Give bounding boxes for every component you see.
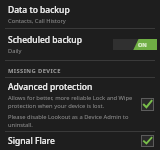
- staticText: Scheduled backup: [8, 34, 82, 46]
- staticText: Data to backup: [8, 4, 70, 16]
- staticText: Please disable Lookout as a Device Admin…: [8, 113, 137, 128]
- button[interactable]: Data to backup: [0, 0, 160, 28]
- button[interactable]: Advanced protection: [0, 78, 160, 131]
- button[interactable]: Scheduled backup: [0, 29, 160, 60]
- staticText: Allows for better, more reliable Lock an…: [8, 94, 137, 109]
- button[interactable]: Signal Flare enabled: [141, 135, 154, 147]
- staticText: Daily: [8, 47, 22, 55]
- staticText: MISSING DEVICE: [8, 67, 61, 75]
- button[interactable]: Advanced protection enabled: [141, 98, 154, 111]
- staticText: Signal Flare: [8, 135, 55, 147]
- button[interactable]: Scheduled backup on: [113, 39, 157, 50]
- staticText: ON: [138, 41, 147, 48]
- staticText: Contacts, Call History: [8, 17, 66, 25]
- staticText: Advanced protection: [8, 81, 93, 93]
- button[interactable]: Signal Flare: [0, 132, 160, 150]
